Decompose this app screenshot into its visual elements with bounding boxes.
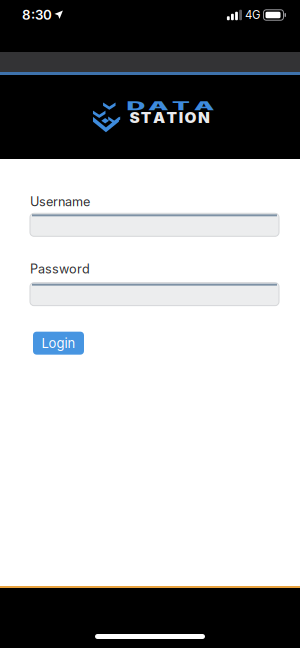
staticText: T [163,109,173,126]
staticText: D [126,99,134,113]
staticText: I [174,109,178,126]
button[interactable]: Username [30,213,279,236]
staticText: A [151,109,162,126]
staticText: N [192,109,203,126]
staticText: O [179,109,190,126]
staticText: T [146,99,154,113]
staticText: 4G [245,8,260,22]
button[interactable]: Password [30,283,279,306]
button[interactable]: Login [33,332,84,355]
staticText: T [140,109,150,126]
staticText: 8:30 [22,7,52,23]
staticText: A [136,99,145,113]
staticText: Login [41,335,75,351]
staticText: A [155,99,164,113]
staticText: Username [30,194,90,209]
button[interactable]: Home [95,634,205,639]
staticText: S [129,109,138,126]
staticText: Password [30,261,90,277]
